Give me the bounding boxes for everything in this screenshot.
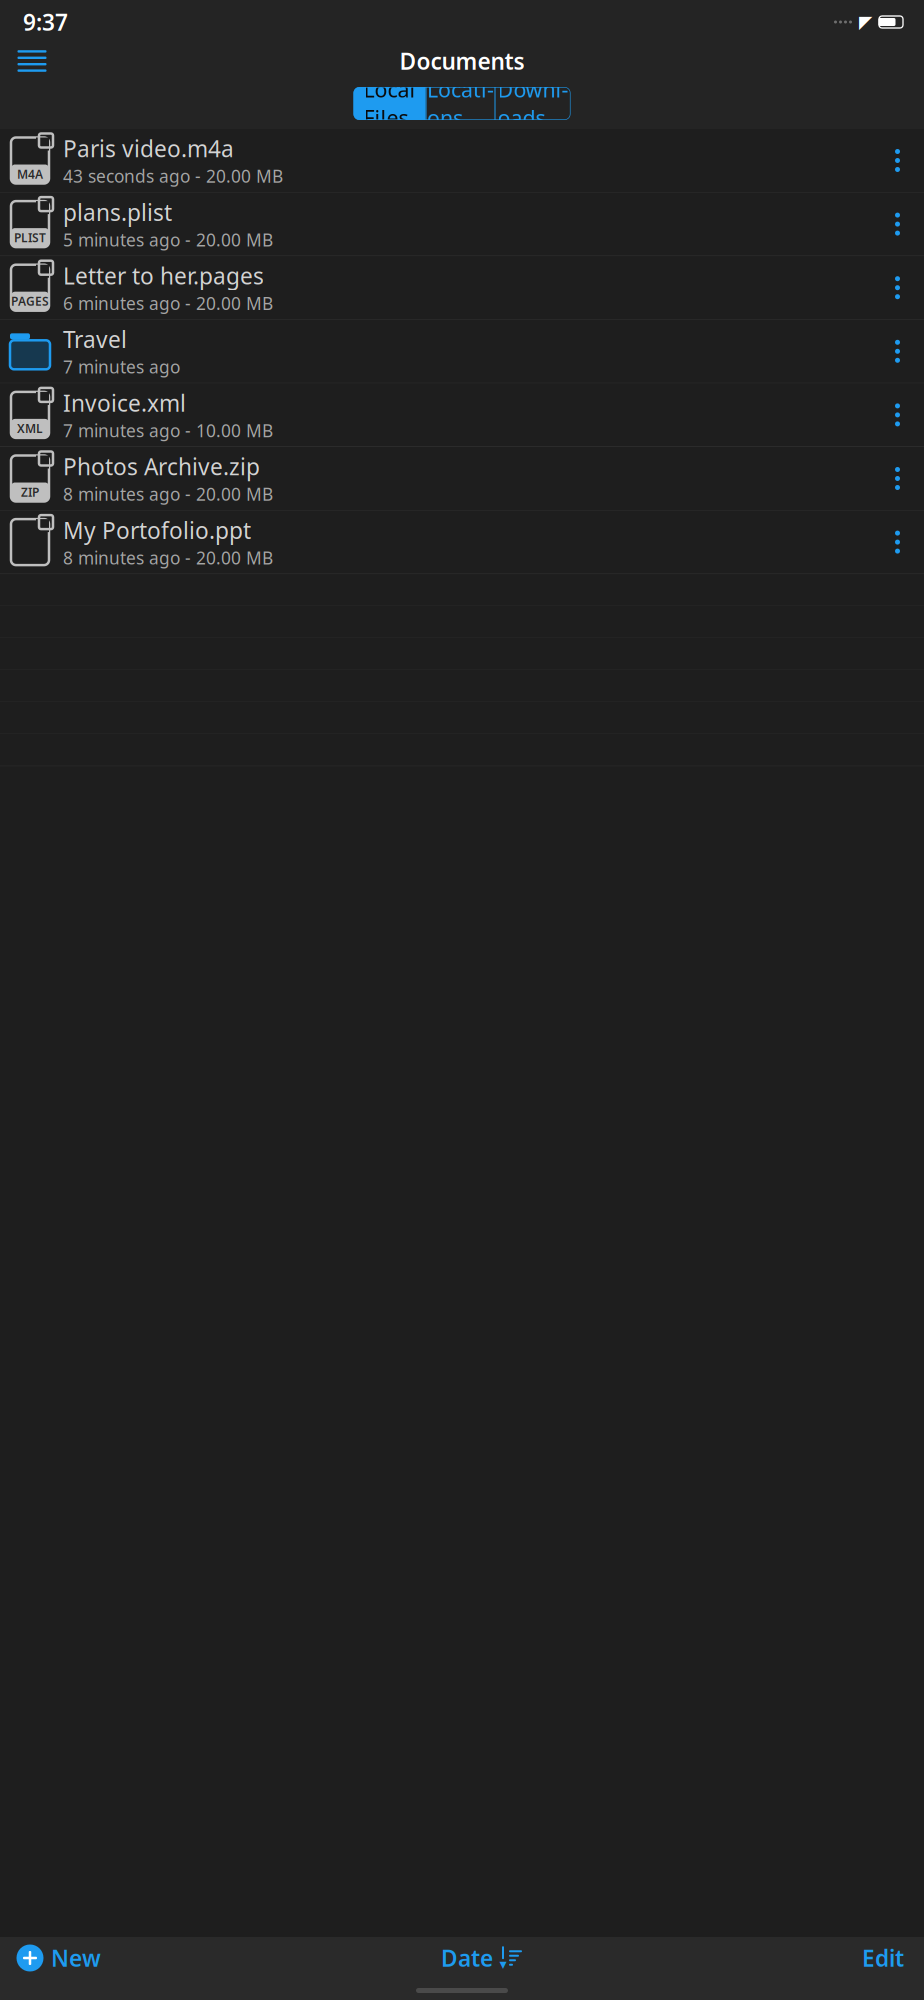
button[interactable]: Edit: [852, 1936, 914, 1980]
button[interactable]: Local Files: [353, 87, 425, 120]
button[interactable]: XML: [0, 383, 924, 447]
staticText: plans.plist: [63, 197, 172, 227]
button[interactable]: Date: [431, 1936, 532, 1980]
staticText: ◤: [859, 12, 872, 32]
staticText: Locations: [427, 75, 494, 132]
staticText: 8 minutes ago - 20.00 MB: [63, 482, 273, 505]
staticText: Local Files: [363, 75, 415, 132]
button[interactable]: Travel: [0, 320, 924, 383]
staticText: Edit: [862, 1943, 904, 1973]
staticText: ZIP: [21, 484, 39, 500]
staticText: PAGES: [11, 293, 49, 309]
staticText: Paris video.m4a: [63, 133, 234, 163]
staticText: 7 minutes ago - 10.00 MB: [63, 419, 273, 442]
button[interactable]: My Portofolio.ppt: [0, 511, 924, 574]
button[interactable]: ZIP: [0, 447, 924, 511]
staticText: Travel: [63, 324, 127, 354]
staticText: 5 minutes ago - 20.00 MB: [63, 228, 273, 251]
staticText: Documents: [399, 46, 524, 76]
staticText: 9:37: [23, 7, 68, 37]
button[interactable]: PAGES: [0, 256, 924, 320]
button[interactable]: New: [5, 1936, 111, 1980]
button[interactable]: Downloads: [495, 87, 570, 120]
staticText: PLIST: [14, 230, 46, 245]
staticText: XML: [17, 420, 43, 436]
button[interactable]: Locations: [426, 87, 494, 120]
staticText: 6 minutes ago - 20.00 MB: [63, 292, 273, 315]
staticText: ▼: [499, 1959, 506, 1970]
staticText: Letter to her.pages: [63, 261, 264, 291]
button[interactable]: Menu: [10, 44, 54, 78]
staticText: Downloads: [497, 75, 568, 132]
button[interactable]: M4A: [0, 129, 924, 193]
staticText: My Portofolio.ppt: [63, 515, 251, 545]
staticText: Date: [441, 1943, 493, 1973]
button[interactable]: PLIST: [0, 193, 924, 256]
staticText: 43 seconds ago - 20.00 MB: [63, 164, 283, 187]
staticText: 7 minutes ago: [63, 355, 180, 378]
staticText: M4A: [17, 166, 43, 182]
staticText: 8 minutes ago - 20.00 MB: [63, 546, 273, 569]
staticText: Invoice.xml: [63, 388, 186, 418]
staticText: Photos Archive.zip: [63, 451, 260, 481]
staticText: New: [51, 1943, 101, 1973]
